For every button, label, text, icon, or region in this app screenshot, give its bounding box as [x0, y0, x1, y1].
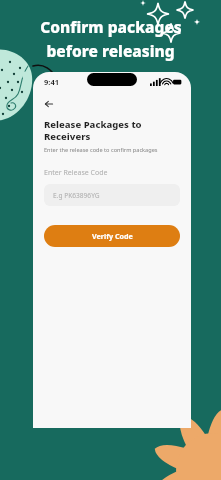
button[interactable]: Verify Code: [44, 225, 180, 247]
button[interactable]: Back: [40, 95, 58, 113]
staticText: 9:41: [44, 77, 59, 87]
staticText: Verify Code: [92, 231, 133, 241]
staticText: before releasing: [46, 40, 175, 61]
staticText: Confirm packages: [40, 16, 182, 37]
staticText: E.g PK63896YG: [53, 191, 100, 200]
staticText: Enter Release Code: [44, 168, 108, 178]
button[interactable]: E.g PK63896YG: [44, 184, 180, 206]
staticText: Release Packages to Receivers: [44, 118, 180, 143]
staticText: Enter the release code to confirm packag…: [44, 146, 158, 154]
